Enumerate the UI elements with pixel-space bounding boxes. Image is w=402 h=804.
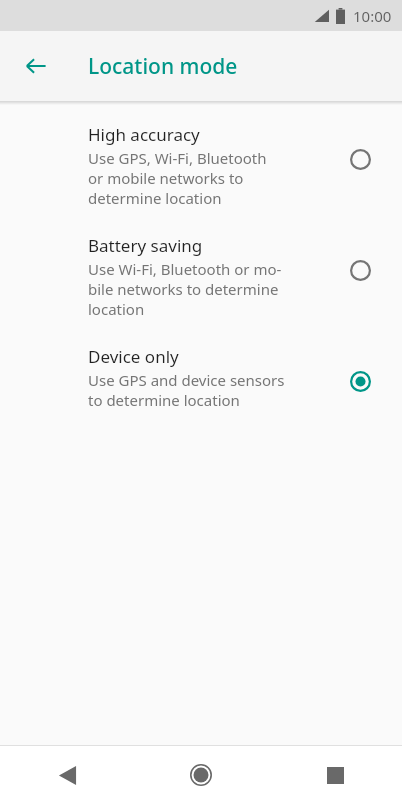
button[interactable]: Back — [0, 746, 134, 804]
staticText: or mobile networks to — [88, 168, 244, 188]
button[interactable]: Battery saving — [0, 230, 402, 323]
button[interactable]: Device only — [0, 341, 402, 414]
staticText: Use Wi-Fi, Bluetooth or mo- — [88, 259, 282, 279]
staticText: High accuracy — [88, 123, 200, 146]
staticText: Battery saving — [88, 234, 203, 257]
staticText: determine location — [88, 188, 222, 208]
button[interactable]: Select Battery saving — [342, 252, 378, 288]
staticText: Use GPS, Wi-Fi, Bluetooth — [88, 148, 267, 168]
button[interactable]: High accuracy — [0, 119, 402, 212]
staticText: Device only — [88, 345, 179, 368]
staticText: Location mode — [88, 52, 238, 81]
staticText: 10:00 — [353, 6, 392, 26]
button[interactable]: Home — [134, 746, 268, 804]
staticText: to determine location — [88, 390, 240, 410]
button[interactable]: Select High accuracy — [342, 141, 378, 177]
button[interactable]: Recent apps — [268, 746, 402, 804]
staticText: bile networks to determine — [88, 279, 279, 299]
button[interactable]: Back — [12, 42, 60, 90]
button[interactable]: Device only selected — [342, 363, 378, 399]
staticText: location — [88, 299, 145, 319]
staticText: Use GPS and device sensors — [88, 370, 285, 390]
